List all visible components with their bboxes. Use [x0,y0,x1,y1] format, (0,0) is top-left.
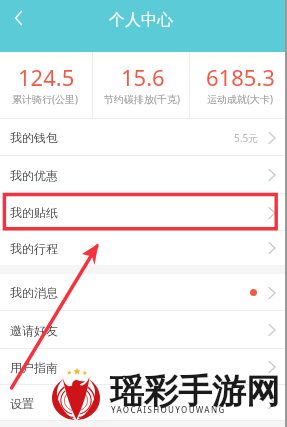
button[interactable]: 我的消息 [0,274,287,311]
staticText: 累计骑行(公里) [12,92,78,106]
staticText: 124.5 [18,62,75,92]
button[interactable]: 我的贴纸 [0,194,287,231]
button[interactable]: 我的行程 [0,231,287,265]
button[interactable]: 我的优惠 [0,156,287,194]
button[interactable]: 用户指南 [0,349,287,385]
staticText: 5.5元 [234,131,259,145]
staticText: 6185.3 [206,62,275,92]
staticText: 我的优惠 [10,168,58,183]
staticText: 邀请好友 [10,323,58,338]
button[interactable]: 我的钱包 [0,119,287,156]
staticText: 15.6 [121,62,165,92]
staticText: 运动成就(大卡) [207,92,273,106]
staticText: 瑶彩手游网 [110,370,280,413]
staticText: 我的消息 [10,285,58,300]
button[interactable]: 邀请好友 [0,311,287,349]
staticText: 我的贴纸 [10,205,58,220]
staticText: 设置 [10,396,34,411]
staticText: 我的行程 [10,241,58,256]
staticText: 个人中心 [109,10,173,30]
staticText: 用户指南 [10,360,58,375]
staticText: 节约碳排放(千克) [104,92,180,106]
button[interactable]: 设置 [0,385,287,421]
staticText: YAOCAISHOUYOUWANG [111,404,226,415]
staticText: 我的钱包 [10,130,58,145]
button[interactable]: Back [6,6,30,30]
